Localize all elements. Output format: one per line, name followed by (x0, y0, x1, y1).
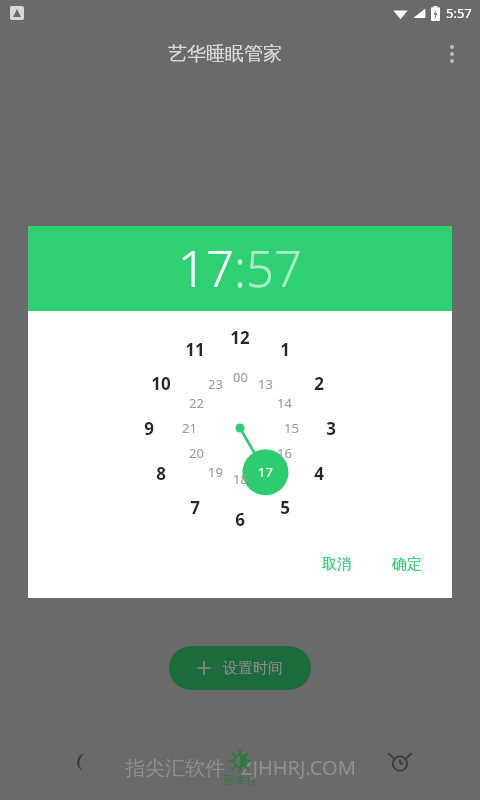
button[interactable]: 6 (225, 504, 255, 534)
button[interactable]: 17 (250, 457, 280, 487)
button[interactable]: 4 (304, 458, 334, 488)
staticText: 23 (208, 375, 223, 393)
staticText: 4 (314, 462, 324, 485)
staticText: 19 (208, 463, 223, 481)
staticText: 艺华睡眠管家 (168, 42, 282, 66)
button[interactable]: 5 (270, 492, 300, 522)
button[interactable]: Alarm (320, 738, 480, 800)
button[interactable]: More options (430, 32, 474, 76)
staticText: 21 (182, 419, 197, 437)
staticText: 5 (280, 496, 290, 519)
staticText: 设置时间 (223, 659, 283, 678)
staticText: 12 (230, 326, 250, 349)
button[interactable]: 2 (304, 368, 334, 398)
staticText: 15 (284, 419, 299, 437)
button[interactable]: 17 (178, 235, 234, 302)
staticText: 10 (151, 372, 171, 395)
staticText: 醒来往 (224, 773, 257, 787)
button[interactable]: 12 (225, 322, 255, 352)
staticText: 取消 (322, 555, 352, 574)
staticText: 17 (258, 463, 273, 481)
button[interactable]: Wake up (160, 738, 320, 800)
button[interactable]: 23 (200, 369, 230, 399)
button[interactable]: 11 (180, 334, 210, 364)
staticText: 确定 (392, 555, 422, 574)
button[interactable]: 14 (269, 388, 299, 418)
button[interactable]: Sleep (0, 738, 160, 800)
button[interactable]: 22 (181, 388, 211, 418)
staticText: 16 (277, 444, 292, 462)
staticText: 3 (326, 417, 336, 440)
staticText: 18 (233, 470, 248, 488)
staticText: 14 (277, 394, 292, 412)
button[interactable]: 9 (134, 413, 164, 443)
button[interactable]: 13 (250, 369, 280, 399)
button[interactable]: 15 (276, 413, 306, 443)
staticText: 8 (156, 462, 166, 485)
staticText: 13 (258, 375, 273, 393)
button[interactable]: 18 (225, 464, 255, 494)
button[interactable]: 1 (270, 334, 300, 364)
staticText: 指尖汇软件 · ZJHHRJ.COM (125, 754, 356, 781)
button[interactable]: 10 (146, 368, 176, 398)
staticText: 11 (185, 338, 205, 361)
button[interactable]: 21 (174, 413, 204, 443)
staticText: 22 (189, 394, 204, 412)
button[interactable]: 20 (181, 438, 211, 468)
staticText: : (234, 235, 246, 302)
button[interactable]: 设置时间 (169, 646, 311, 690)
staticText: 9 (144, 417, 154, 440)
staticText: 1 (280, 338, 290, 361)
staticText: 7 (190, 496, 200, 519)
button[interactable]: 8 (146, 458, 176, 488)
button[interactable]: 确定 (380, 547, 434, 582)
staticText: 20 (189, 444, 204, 462)
button[interactable]: 16 (269, 438, 299, 468)
button[interactable]: 00 (225, 362, 255, 392)
button[interactable]: 57 (246, 235, 302, 302)
staticText: 2 (314, 372, 324, 395)
button[interactable]: 19 (200, 457, 230, 487)
button[interactable]: 7 (180, 492, 210, 522)
staticText: 5:57 (446, 4, 472, 22)
button[interactable]: 取消 (310, 547, 364, 582)
staticText: 00 (233, 368, 248, 386)
staticText: 6 (235, 508, 245, 531)
button[interactable]: 3 (316, 413, 346, 443)
